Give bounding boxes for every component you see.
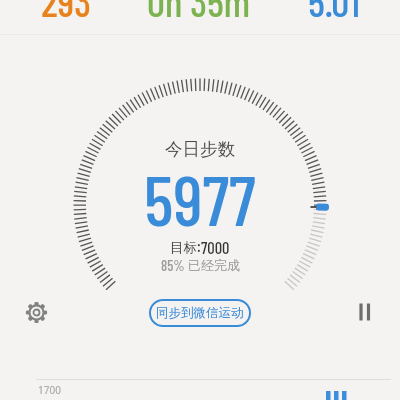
staticText: 同步到微信运动 bbox=[156, 305, 244, 321]
staticText: 7000 bbox=[201, 237, 230, 257]
staticText: 5977 bbox=[144, 156, 256, 240]
staticText: 1700 bbox=[38, 383, 61, 397]
staticText: 0h 35m bbox=[147, 0, 250, 25]
button[interactable] bbox=[24, 300, 49, 325]
staticText: 293 bbox=[41, 0, 91, 25]
staticText: 85% bbox=[161, 256, 188, 273]
button[interactable]: 同步到微信运动 bbox=[149, 299, 251, 327]
staticText: 目标: bbox=[170, 238, 201, 256]
staticText: 今日步数 bbox=[165, 138, 235, 160]
button[interactable] bbox=[355, 300, 375, 324]
staticText: 5.01 bbox=[308, 0, 360, 25]
staticText: 已经完成 bbox=[188, 257, 240, 273]
